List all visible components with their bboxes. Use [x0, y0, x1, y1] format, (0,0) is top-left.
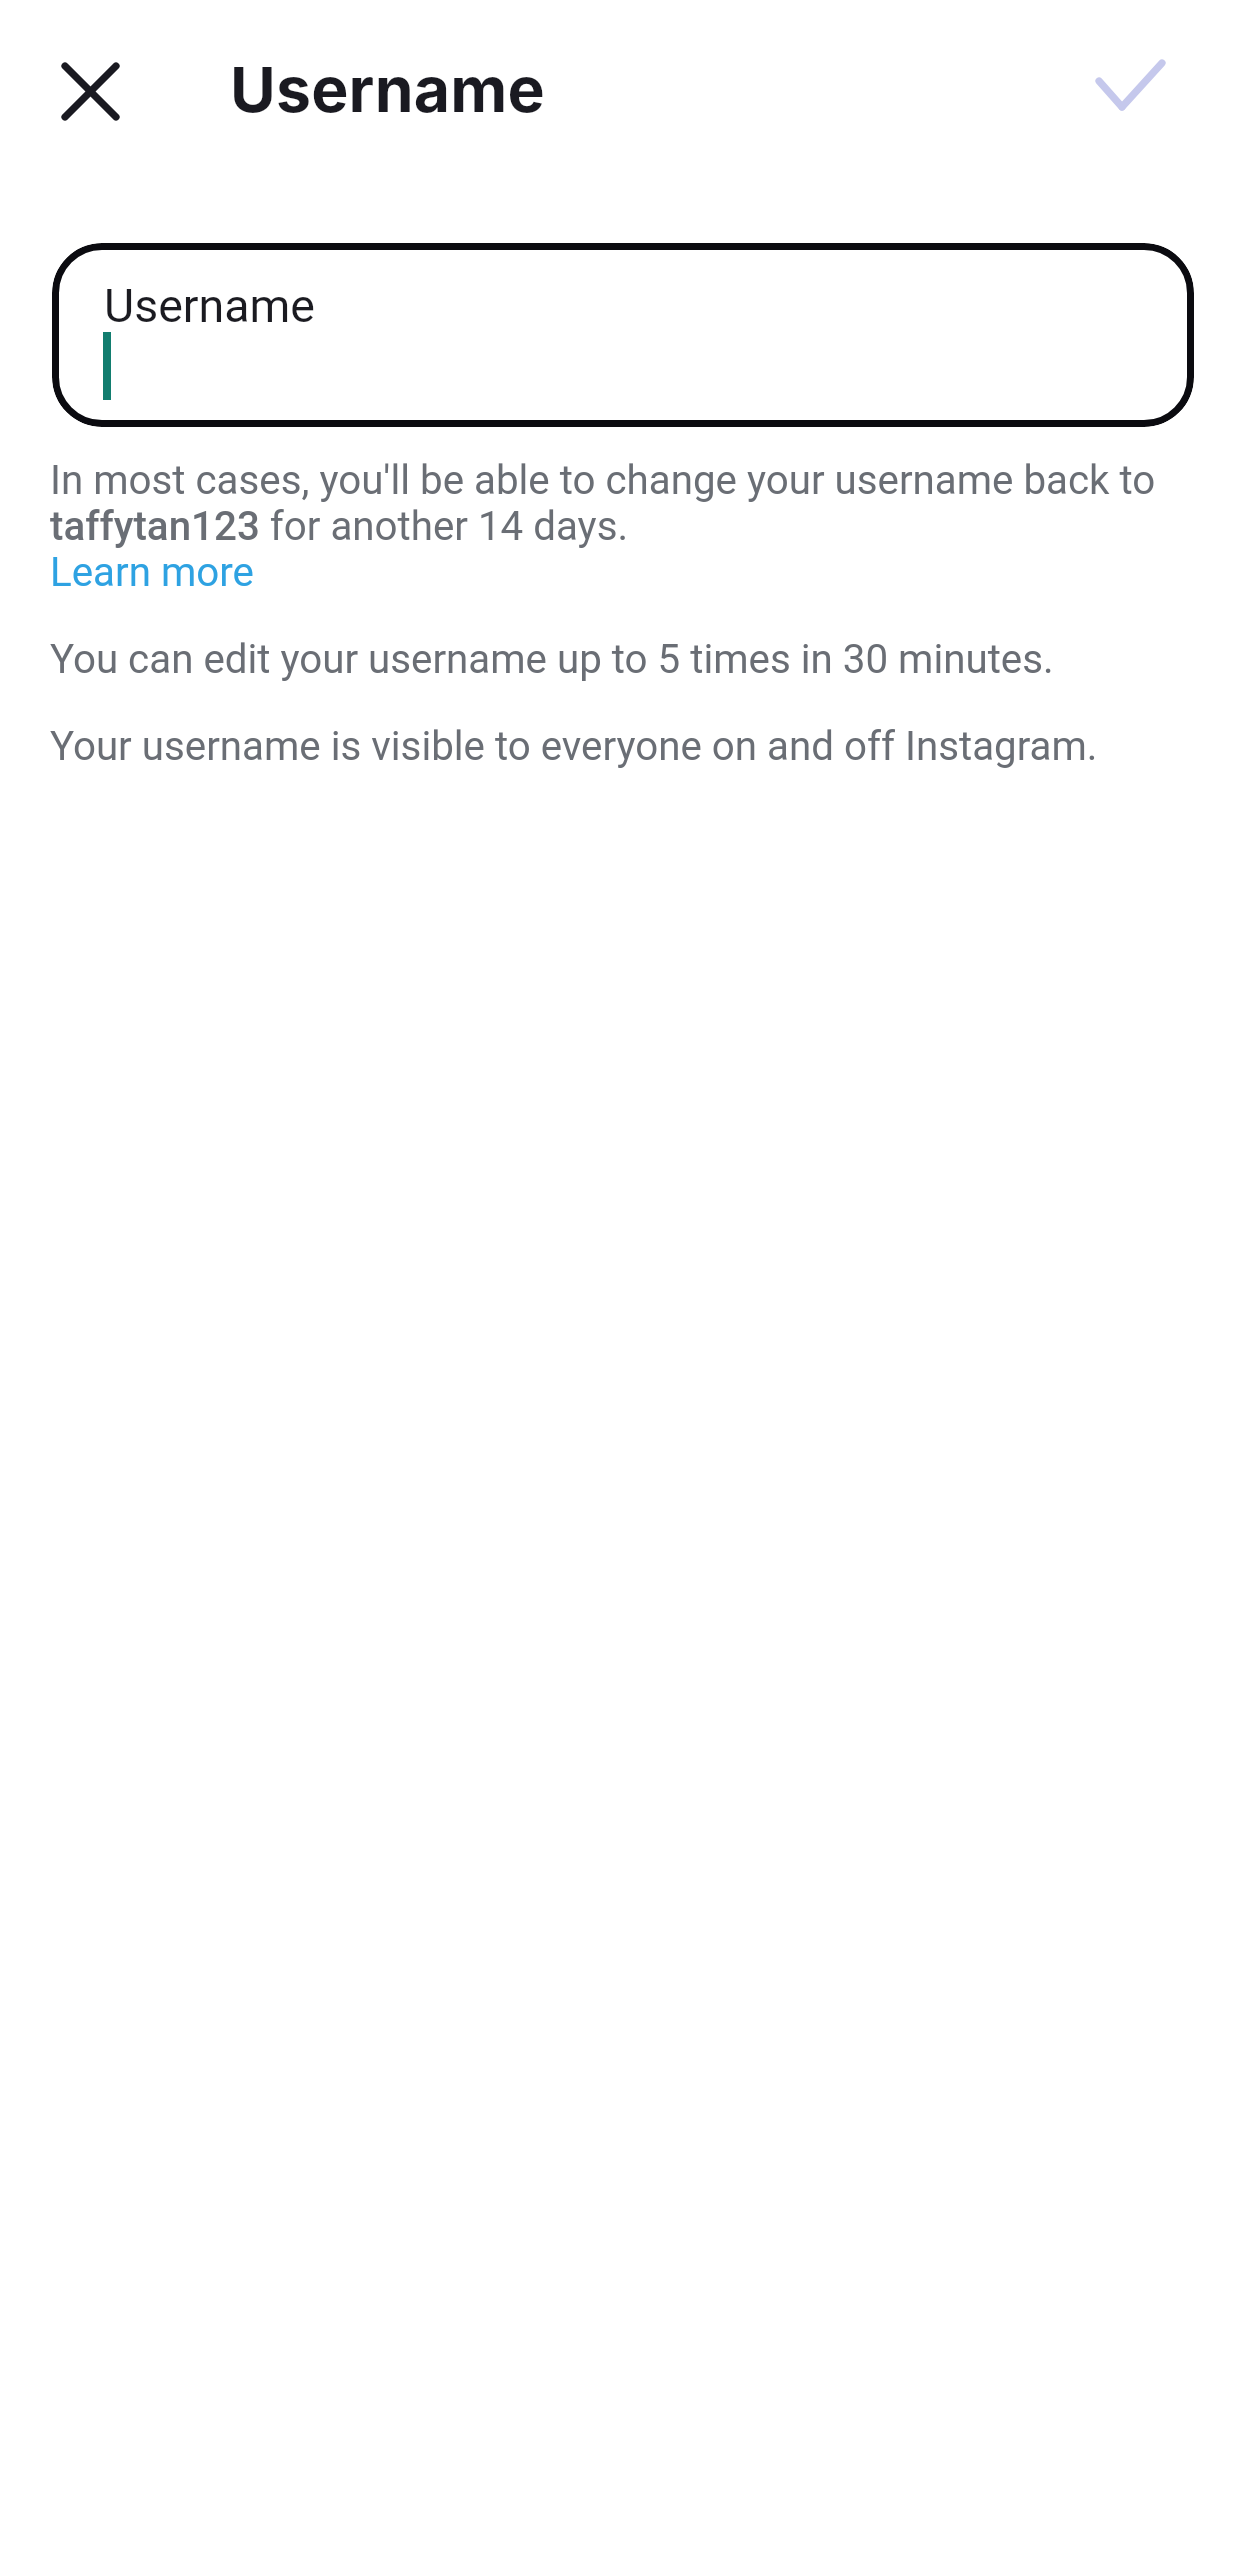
staticText: Your username is visible to everyone on … — [50, 724, 1098, 770]
button[interactable]: Save username — [1070, 40, 1180, 150]
staticText: You can edit your username up to 5 times… — [50, 637, 1054, 683]
staticText: Username — [104, 279, 315, 333]
staticText: Username — [230, 51, 545, 127]
button[interactable]: Username — [52, 243, 1194, 427]
button[interactable]: Close — [41, 42, 139, 140]
staticText: In most cases, you'll be able to change … — [50, 458, 1202, 550]
button[interactable]: Learn more — [50, 550, 254, 596]
